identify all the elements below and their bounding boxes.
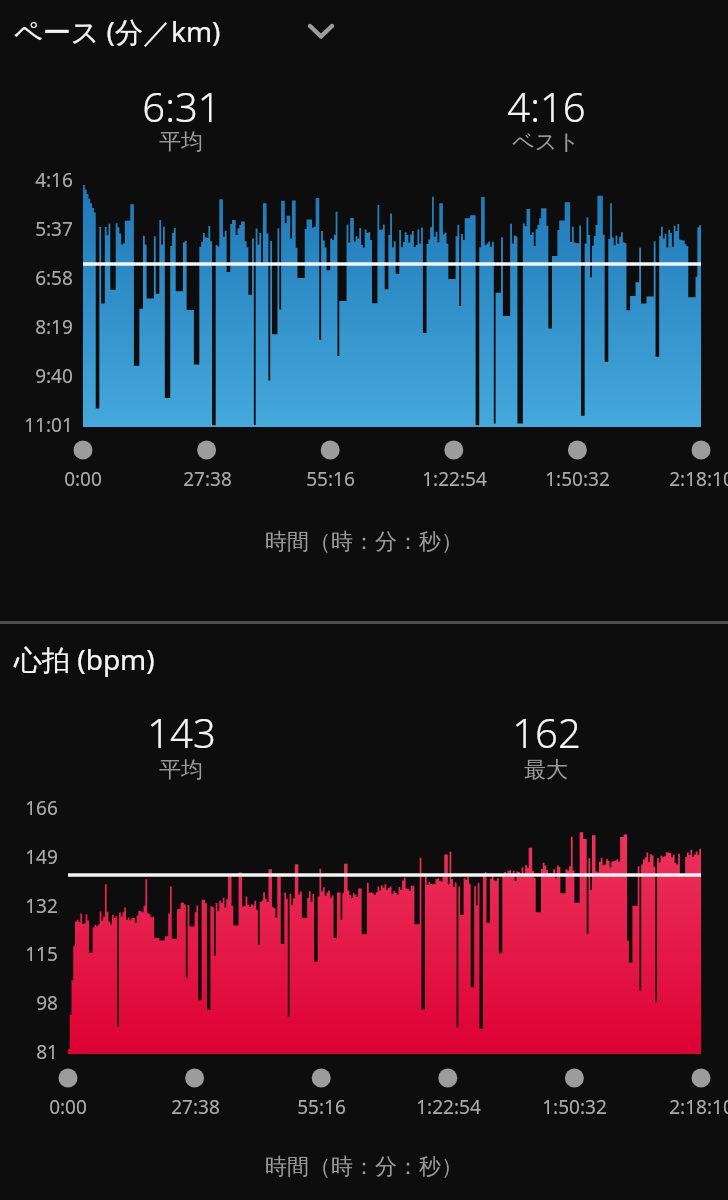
- staticText: 1:22:54: [416, 1094, 481, 1120]
- staticText: 2:18:10: [669, 1094, 728, 1120]
- staticText: 4:16: [35, 167, 73, 193]
- button[interactable]: ペース (分／km): [14, 6, 221, 56]
- staticText: 166: [25, 795, 58, 821]
- staticText: 時間（時：分：秒）: [265, 1153, 463, 1181]
- staticText: 162: [512, 705, 581, 759]
- staticText: 1:50:32: [545, 466, 610, 492]
- staticText: 149: [25, 844, 58, 870]
- button[interactable]: Change metric: [292, 6, 350, 56]
- staticText: 8:19: [35, 314, 73, 340]
- staticText: 0:00: [49, 1094, 87, 1120]
- staticText: 27:38: [171, 1094, 220, 1120]
- staticText: 2:18:10: [669, 466, 728, 492]
- staticText: ペース (分／km): [14, 12, 221, 50]
- staticText: 平均: [159, 756, 203, 784]
- staticText: 11:01: [24, 412, 73, 438]
- staticText: 27:38: [183, 466, 232, 492]
- staticText: 98: [36, 990, 58, 1016]
- staticText: 最大: [524, 756, 568, 784]
- staticText: 1:50:32: [542, 1094, 607, 1120]
- staticText: 4:16: [507, 79, 586, 133]
- staticText: 81: [36, 1039, 58, 1065]
- staticText: 143: [147, 705, 216, 759]
- staticText: 55:16: [297, 1094, 346, 1120]
- staticText: 平均: [159, 128, 203, 156]
- button[interactable]: 心拍 (bpm): [14, 634, 155, 684]
- staticText: 115: [25, 941, 58, 967]
- staticText: 0:00: [64, 466, 102, 492]
- staticText: 132: [25, 893, 58, 919]
- staticText: 心拍 (bpm): [14, 640, 155, 678]
- staticText: 時間（時：分：秒）: [265, 528, 463, 556]
- staticText: 9:40: [35, 363, 73, 389]
- staticText: ベスト: [512, 128, 580, 156]
- staticText: 6:58: [35, 265, 73, 291]
- staticText: 5:37: [35, 216, 73, 242]
- staticText: 6:31: [142, 79, 221, 133]
- staticText: 1:22:54: [422, 466, 487, 492]
- staticText: 55:16: [306, 466, 355, 492]
